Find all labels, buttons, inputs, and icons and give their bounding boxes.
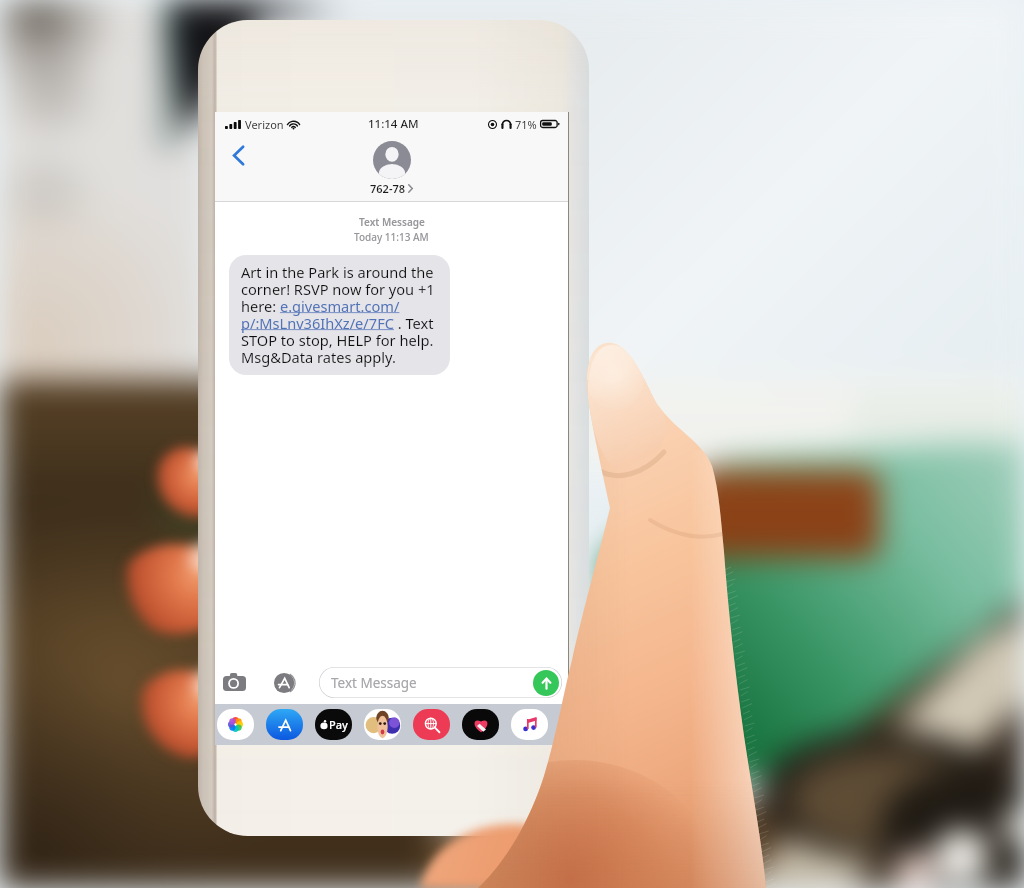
- staticText: Verizon: [245, 117, 284, 132]
- button[interactable]: Images: [413, 709, 450, 740]
- button[interactable]: Digital Touch: [462, 709, 499, 740]
- staticText: Pay: [329, 717, 348, 732]
- staticText: Today 11:13 AM: [354, 230, 429, 244]
- button[interactable]: Back: [223, 140, 253, 170]
- button[interactable]: Contact details: [373, 141, 411, 179]
- button[interactable]: Art in the Park is around the corner! RS…: [229, 255, 450, 375]
- button[interactable]: Music: [511, 709, 548, 740]
- button[interactable]: Send: [533, 670, 559, 696]
- button[interactable]: Text Message: [319, 667, 562, 698]
- staticText: 71%: [515, 117, 537, 132]
- button[interactable]: Photos: [217, 709, 254, 740]
- staticText: 762-78: [370, 181, 405, 196]
- button[interactable]: Memoji: [364, 709, 401, 740]
- staticText: Text Message: [331, 674, 417, 692]
- button[interactable]: App Store: [270, 668, 299, 697]
- staticText: 11:14 AM: [368, 116, 419, 132]
- staticText: Art in the Park is around the corner! RS…: [241, 262, 435, 367]
- button[interactable]: Apple Pay: [315, 709, 352, 740]
- button[interactable]: Camera: [219, 669, 249, 695]
- button[interactable]: App Store: [266, 709, 303, 740]
- staticText: Text Message: [359, 215, 425, 229]
